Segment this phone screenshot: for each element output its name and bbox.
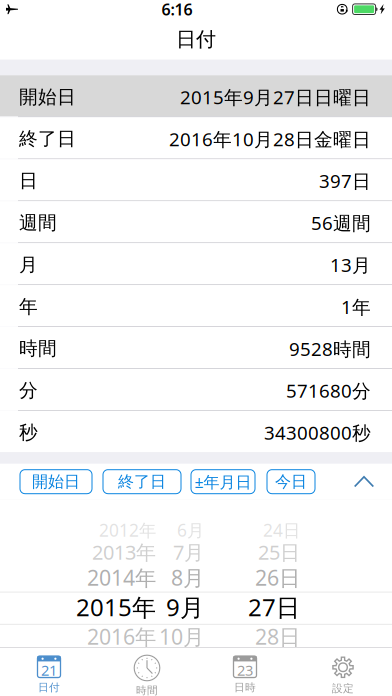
- staticText: 34300800秒: [264, 420, 371, 445]
- staticText: 時間: [19, 337, 57, 360]
- staticText: 月: [19, 253, 38, 276]
- button[interactable]: 時間: [0, 327, 392, 368]
- staticText: 1年: [341, 294, 371, 319]
- staticText: 秒: [19, 421, 38, 444]
- staticText: 9月: [166, 591, 204, 623]
- button[interactable]: 秒: [0, 411, 392, 452]
- staticText: ±年月日: [194, 471, 251, 492]
- staticText: 571680分: [286, 378, 371, 403]
- staticText: 2016年10月28日金曜日: [169, 126, 371, 151]
- button[interactable]: 開始日: [20, 470, 92, 494]
- staticText: 2016年: [87, 622, 156, 651]
- staticText: 開始日: [19, 85, 76, 108]
- staticText: 設定: [332, 682, 354, 695]
- staticText: 2015年9月27日日曜日: [180, 85, 371, 109]
- staticText: 年: [19, 295, 38, 318]
- staticText: 2015年: [76, 591, 156, 623]
- staticText: 日付: [176, 27, 216, 51]
- staticText: 日付: [38, 681, 60, 694]
- staticText: 23: [237, 660, 253, 680]
- staticText: 28日: [255, 622, 300, 651]
- staticText: 25日: [258, 539, 300, 565]
- staticText: 56週間: [311, 210, 371, 235]
- staticText: 8月: [171, 563, 204, 592]
- button[interactable]: 今日: [267, 470, 315, 494]
- button[interactable]: 月: [0, 243, 392, 284]
- button[interactable]: 開始日: [0, 75, 392, 116]
- staticText: 9528時間: [289, 336, 371, 361]
- staticText: 開始日: [32, 472, 80, 491]
- button[interactable]: 日: [0, 159, 392, 200]
- staticText: 21: [41, 660, 57, 680]
- staticText: 27日: [248, 591, 300, 623]
- staticText: 10月: [159, 622, 204, 651]
- staticText: 週間: [19, 211, 57, 234]
- staticText: 日時: [234, 681, 256, 694]
- staticText: 2014年: [87, 563, 156, 592]
- button[interactable]: 21: [0, 648, 98, 696]
- button[interactable]: 設定: [294, 648, 392, 696]
- staticText: 日: [19, 169, 38, 192]
- staticText: 6:16: [162, 0, 193, 20]
- button[interactable]: 年: [0, 285, 392, 326]
- staticText: 7月: [173, 539, 204, 565]
- button[interactable]: ±年月日: [191, 470, 255, 494]
- staticText: 分: [19, 379, 38, 402]
- staticText: 2013年: [92, 539, 156, 565]
- staticText: 今日: [275, 472, 307, 491]
- button[interactable]: 週間: [0, 201, 392, 242]
- button[interactable]: 23: [196, 648, 294, 696]
- staticText: 終了日: [19, 127, 76, 150]
- staticText: 6月: [177, 518, 204, 541]
- button[interactable]: Collapse picker: [345, 464, 383, 500]
- staticText: 26日: [255, 563, 300, 592]
- staticText: 2012年: [99, 518, 156, 541]
- button[interactable]: 分: [0, 369, 392, 410]
- button[interactable]: 時間: [98, 648, 196, 696]
- button[interactable]: 終了日: [0, 117, 392, 158]
- staticText: 終了日: [118, 472, 166, 491]
- staticText: 397日: [319, 168, 371, 193]
- staticText: 24日: [263, 518, 300, 541]
- staticText: 13月: [330, 252, 371, 277]
- button[interactable]: 終了日: [103, 470, 181, 494]
- staticText: 時間: [136, 684, 158, 696]
